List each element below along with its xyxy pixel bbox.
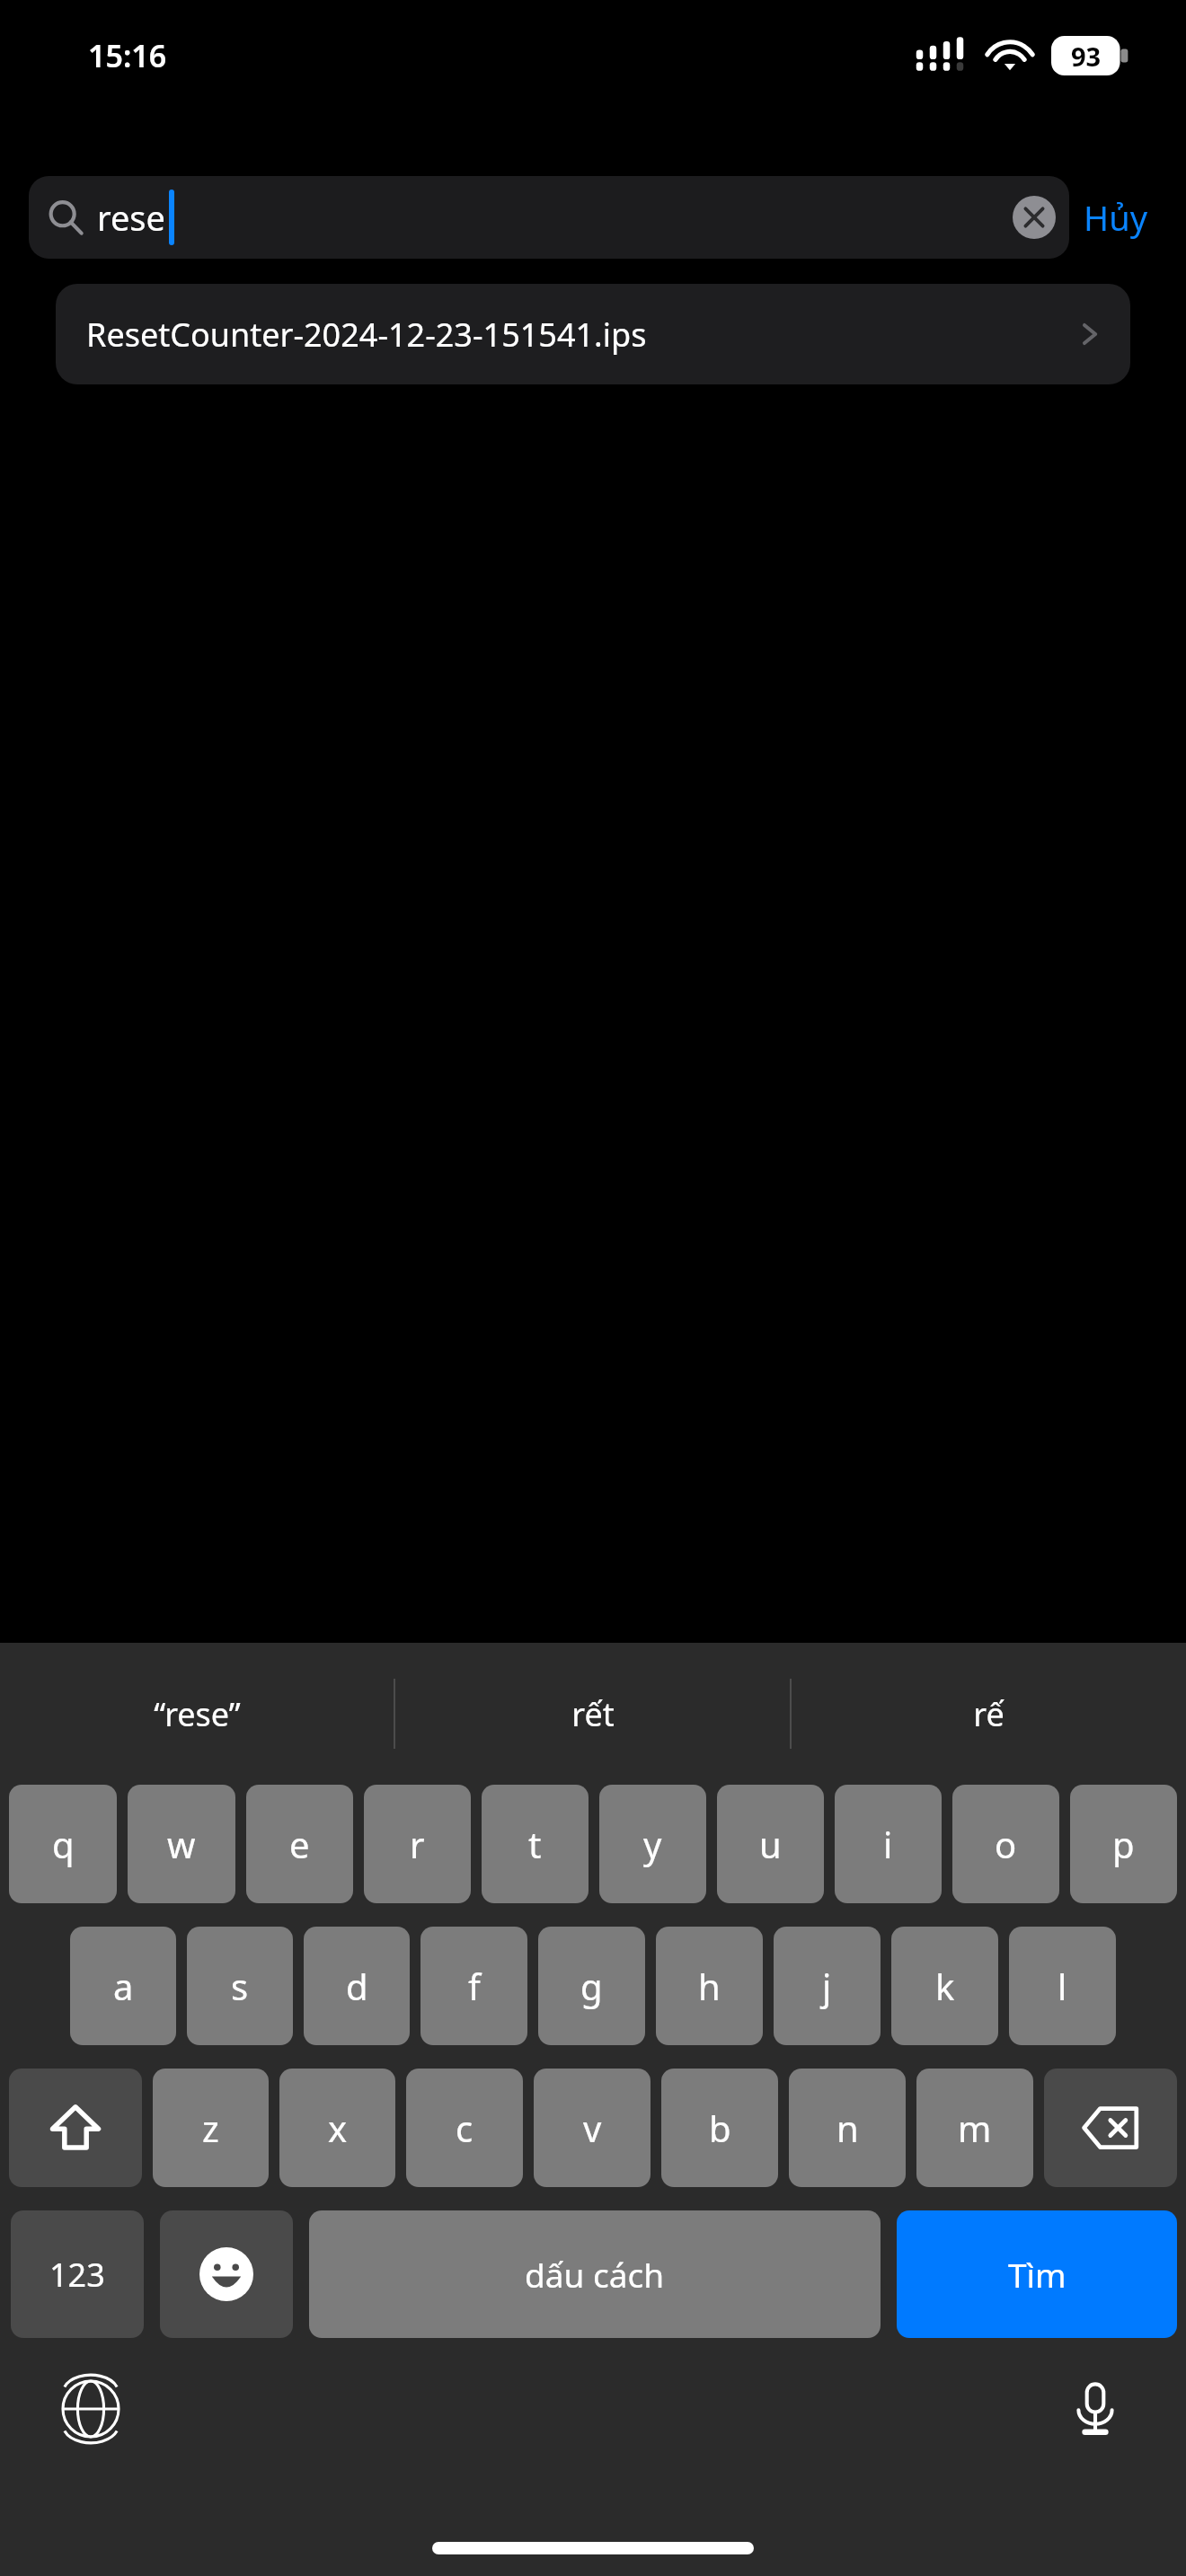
button[interactable]: m <box>916 2069 1033 2187</box>
button[interactable]: Change keyboard language <box>59 2378 122 2440</box>
button[interactable]: u <box>717 1785 824 1903</box>
staticText: i <box>883 1820 893 1868</box>
button[interactable]: “rese” <box>0 1643 394 1785</box>
button[interactable]: Dictation <box>1064 2378 1127 2440</box>
staticText: w <box>167 1820 196 1868</box>
staticText: x <box>328 2104 348 2152</box>
staticText: “rese” <box>154 1692 241 1736</box>
staticText: n <box>836 2104 859 2152</box>
button[interactable]: p <box>1070 1785 1177 1903</box>
button[interactable]: dấu cách <box>309 2210 881 2338</box>
staticText: j <box>822 1962 832 2010</box>
button[interactable]: c <box>406 2069 523 2187</box>
button[interactable]: Shift <box>9 2069 142 2187</box>
staticText: b <box>709 2104 731 2152</box>
button[interactable]: z <box>153 2069 269 2187</box>
staticText: Tìm <box>1008 2252 1067 2297</box>
staticText: q <box>52 1820 75 1868</box>
staticText: l <box>1058 1962 1067 2010</box>
staticText: Hủy <box>1084 194 1148 241</box>
button[interactable]: o <box>952 1785 1059 1903</box>
staticText: c <box>456 2104 474 2152</box>
staticText: 123 <box>49 2253 105 2297</box>
button[interactable]: Backspace <box>1044 2069 1177 2187</box>
staticText: rết <box>571 1692 615 1736</box>
button[interactable]: Emoji <box>160 2210 293 2338</box>
button[interactable]: Clear text <box>1010 193 1058 242</box>
button[interactable]: Hủy <box>1069 183 1163 251</box>
button[interactable]: Tìm <box>897 2210 1177 2338</box>
button[interactable]: b <box>661 2069 778 2187</box>
staticText: f <box>468 1962 481 2010</box>
staticText: z <box>202 2104 219 2152</box>
button[interactable]: w <box>128 1785 235 1903</box>
button[interactable]: q <box>9 1785 117 1903</box>
staticText: u <box>759 1820 782 1868</box>
button[interactable]: rết <box>395 1643 790 1785</box>
button[interactable]: ResetCounter-2024-12-23-151541.ips <box>56 284 1130 384</box>
button[interactable]: k <box>891 1927 998 2045</box>
staticText: g <box>580 1962 603 2010</box>
button[interactable]: i <box>835 1785 942 1903</box>
staticText: p <box>1112 1820 1135 1868</box>
button[interactable]: h <box>656 1927 763 2045</box>
button[interactable]: l <box>1009 1927 1116 2045</box>
button[interactable]: t <box>482 1785 589 1903</box>
button[interactable]: j <box>774 1927 881 2045</box>
button[interactable]: rế <box>792 1643 1186 1785</box>
staticText: ResetCounter-2024-12-23-151541.ips <box>86 313 647 357</box>
staticText: o <box>995 1820 1017 1868</box>
button[interactable]: x <box>279 2069 395 2187</box>
staticText: m <box>958 2104 992 2152</box>
button[interactable]: 123 <box>11 2210 144 2338</box>
button[interactable]: s <box>187 1927 293 2045</box>
button[interactable]: rese <box>29 176 1069 259</box>
staticText: dấu cách <box>525 2252 665 2297</box>
staticText: 15:16 <box>88 35 167 76</box>
button[interactable]: v <box>534 2069 651 2187</box>
button[interactable]: g <box>538 1927 645 2045</box>
staticText: e <box>289 1820 310 1868</box>
button[interactable]: e <box>246 1785 353 1903</box>
staticText: t <box>528 1820 542 1868</box>
button[interactable]: n <box>789 2069 906 2187</box>
staticText: a <box>113 1962 134 2010</box>
staticText: v <box>583 2104 602 2152</box>
staticText: h <box>698 1962 721 2010</box>
staticText: rese <box>97 194 166 241</box>
button[interactable]: y <box>599 1785 706 1903</box>
staticText: r <box>410 1820 425 1868</box>
button[interactable]: d <box>304 1927 410 2045</box>
button[interactable]: r <box>364 1785 471 1903</box>
staticText: rế <box>973 1692 1005 1736</box>
button[interactable]: f <box>420 1927 527 2045</box>
staticText: s <box>231 1962 249 2010</box>
staticText: d <box>346 1962 368 2010</box>
staticText: y <box>643 1820 662 1868</box>
staticText: k <box>935 1962 955 2010</box>
button[interactable]: a <box>70 1927 176 2045</box>
staticText: 93 <box>1071 39 1102 74</box>
